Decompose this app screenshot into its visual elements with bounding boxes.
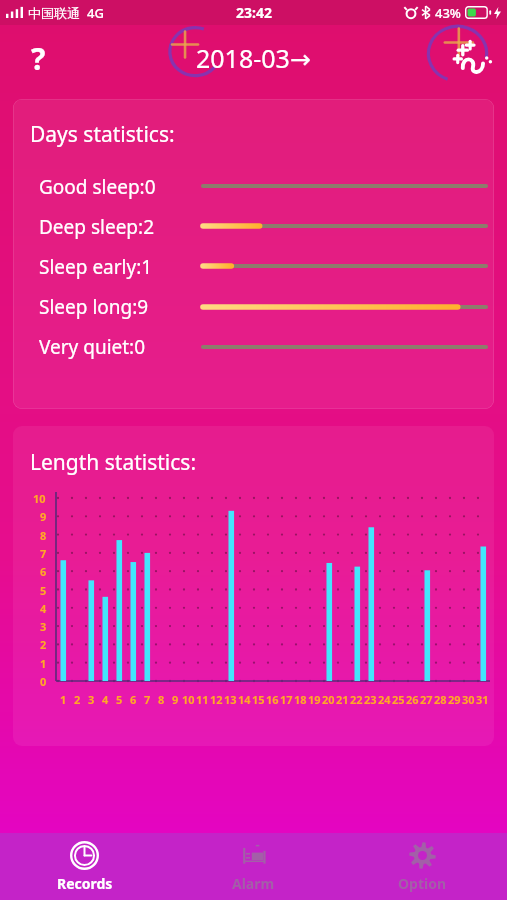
staticText: 9 [172, 692, 179, 707]
staticText: Deep sleep:2 [39, 214, 155, 240]
staticText: Records [57, 874, 113, 893]
button[interactable]: Option [338, 833, 507, 900]
staticText: 18 [294, 692, 307, 707]
staticText: 16 [266, 692, 279, 707]
staticText: Option [398, 874, 447, 893]
staticText: 0 [40, 674, 47, 689]
staticText: 6 [40, 564, 47, 579]
staticText: 14 [238, 692, 251, 707]
staticText: 15 [252, 692, 265, 707]
staticText: 29 [448, 692, 461, 707]
staticText: 6 [130, 692, 137, 707]
staticText: 3 [88, 692, 95, 707]
staticText: 9 [40, 509, 47, 524]
staticText: 5 [40, 583, 47, 598]
button[interactable]: Length statistics: [13, 426, 494, 746]
staticText: 中国联通 [28, 5, 80, 21]
staticText: Good sleep:0 [39, 174, 156, 200]
staticText: 12 [210, 692, 223, 707]
staticText: 23 [364, 692, 377, 707]
staticText: Very quiet:0 [39, 334, 146, 360]
staticText: 4 [102, 692, 109, 707]
staticText: Alarm [232, 874, 275, 893]
staticText: 43% [435, 4, 461, 22]
staticText: 24 [378, 692, 391, 707]
staticText: 25 [392, 692, 405, 707]
button[interactable]: Records [0, 833, 169, 900]
staticText: 22 [350, 692, 363, 707]
staticText: 21 [336, 692, 349, 707]
staticText: 4 [40, 601, 47, 616]
button[interactable]: Days statistics: [13, 99, 494, 409]
staticText: 8 [158, 692, 165, 707]
staticText: Sleep early:1 [39, 254, 153, 280]
staticText: 31 [476, 692, 489, 707]
staticText: 20 [322, 692, 335, 707]
staticText: 8 [40, 528, 47, 543]
staticText: 30 [462, 692, 475, 707]
button[interactable]: Help [14, 34, 62, 82]
staticText: 28 [434, 692, 447, 707]
staticText: 1 [60, 692, 67, 707]
staticText: 1 [40, 656, 47, 671]
button[interactable]: Alarm [169, 833, 338, 900]
staticText: 23:42 [236, 3, 272, 22]
staticText: Length statistics: [30, 448, 197, 477]
staticText: 11 [196, 692, 209, 707]
staticText: 19 [308, 692, 321, 707]
staticText: 7 [144, 692, 151, 707]
staticText: 10 [182, 692, 195, 707]
staticText: ? [31, 38, 46, 79]
staticText: Days statistics: [30, 120, 175, 149]
staticText: 2 [40, 637, 47, 652]
staticText: 26 [406, 692, 419, 707]
button[interactable]: 2018-03→ [196, 41, 311, 75]
staticText: 2 [74, 692, 81, 707]
staticText: 13 [224, 692, 237, 707]
staticText: 2018-03→ [196, 41, 311, 75]
staticText: 5 [116, 692, 123, 707]
staticText: 3 [40, 619, 47, 634]
button[interactable]: Sleep mode [449, 35, 495, 81]
staticText: 4G [87, 4, 104, 22]
staticText: 10 [33, 491, 46, 506]
staticText: 27 [420, 692, 433, 707]
staticText: 7 [40, 546, 47, 561]
staticText: Sleep long:9 [39, 294, 149, 320]
staticText: 17 [280, 692, 293, 707]
